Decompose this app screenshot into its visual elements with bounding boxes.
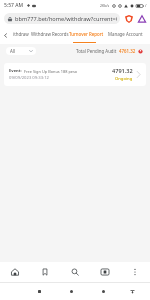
button[interactable]: bbm777.bet/home/withdraw?current=Q — [4, 13, 120, 24]
staticText: 5:57 AM — [4, 2, 24, 9]
button[interactable]: Back — [0, 26, 11, 44]
button[interactable]: Home — [3, 262, 27, 282]
staticText: / — [145, 3, 147, 8]
button[interactable]: ithdraw — [11, 26, 31, 44]
button[interactable]: Brave Shields — [122, 12, 135, 25]
button[interactable]: Recents — [34, 286, 44, 296]
button[interactable]: Hide keyboard — [127, 286, 137, 296]
button[interactable]: App menu — [135, 12, 148, 25]
button[interactable]: Turnover Report — [69, 26, 104, 44]
staticText: Manage Account — [108, 31, 143, 37]
staticText: 2Kb/s — [100, 3, 110, 8]
button[interactable]: Event: — [4, 63, 146, 86]
button[interactable]: Search — [63, 262, 87, 282]
staticText: Free Sign Up Bonus 188 peso — [24, 69, 78, 74]
staticText: 4791.32 — [112, 67, 133, 75]
button[interactable]: Manage Account — [104, 26, 146, 44]
button[interactable]: Info — [138, 49, 143, 54]
button[interactable]: Back — [98, 286, 108, 296]
staticText: bbm777.bet/home/withdraw?current=Q — [15, 15, 117, 23]
button[interactable]: Bookmarks — [33, 262, 57, 282]
staticText: ithdraw — [13, 31, 29, 37]
staticText: Ongoing — [115, 76, 133, 82]
staticText: Event: — [9, 68, 22, 74]
button[interactable]: All — [6, 47, 36, 55]
button[interactable]: Home — [66, 286, 76, 296]
staticText: All — [10, 48, 16, 54]
button[interactable]: Withdraw Records — [31, 26, 69, 44]
staticText: 09/09/2023 09:33:12 — [9, 75, 49, 81]
staticText: Withdraw Records — [31, 31, 69, 37]
button[interactable]: Tabs — [93, 262, 117, 282]
staticText: Turnover Report — [69, 31, 104, 37]
button[interactable]: More options — [123, 262, 147, 282]
staticText: Total Pending Audit — [76, 48, 117, 54]
staticText: 4761.32 — [119, 48, 136, 54]
